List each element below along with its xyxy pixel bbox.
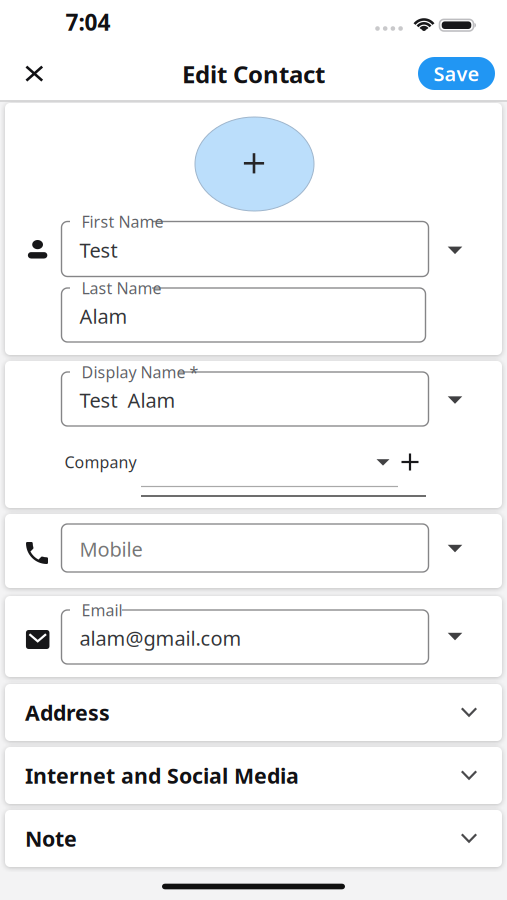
button[interactable] [61, 372, 428, 426]
staticText: 7:04 [65, 7, 110, 37]
staticText: First Name [81, 211, 163, 232]
button[interactable]: Address [5, 684, 502, 740]
button[interactable] [397, 449, 423, 475]
button[interactable] [141, 453, 427, 497]
button[interactable] [440, 533, 470, 563]
staticText: Company [64, 451, 136, 473]
staticText: Address [25, 698, 110, 727]
button[interactable]: Save [418, 57, 495, 90]
button[interactable] [371, 450, 395, 474]
button[interactable] [61, 610, 428, 664]
staticText: Last Name [81, 277, 161, 299]
button[interactable] [193, 115, 315, 212]
button[interactable]: Internet and Social Media [5, 747, 502, 803]
staticText: Save [433, 60, 479, 87]
button[interactable] [61, 221, 428, 276]
staticText: Edit Contact [182, 58, 325, 90]
button[interactable] [16, 56, 52, 92]
staticText: Mobile [79, 536, 142, 562]
button[interactable] [61, 524, 428, 572]
button[interactable] [440, 385, 470, 415]
staticText: Test [79, 237, 117, 263]
button[interactable] [440, 235, 470, 265]
staticText: Display Name * [81, 361, 198, 383]
staticText: Internet and Social Media [25, 761, 299, 790]
button[interactable]: Note [5, 810, 502, 866]
staticText: Test Alam [79, 387, 175, 413]
button[interactable] [440, 621, 470, 651]
staticText: alam@gmail.com [79, 625, 241, 651]
staticText: Email [81, 599, 122, 621]
button[interactable] [61, 288, 425, 342]
staticText: Note [25, 824, 77, 853]
staticText: Alam [79, 303, 127, 329]
